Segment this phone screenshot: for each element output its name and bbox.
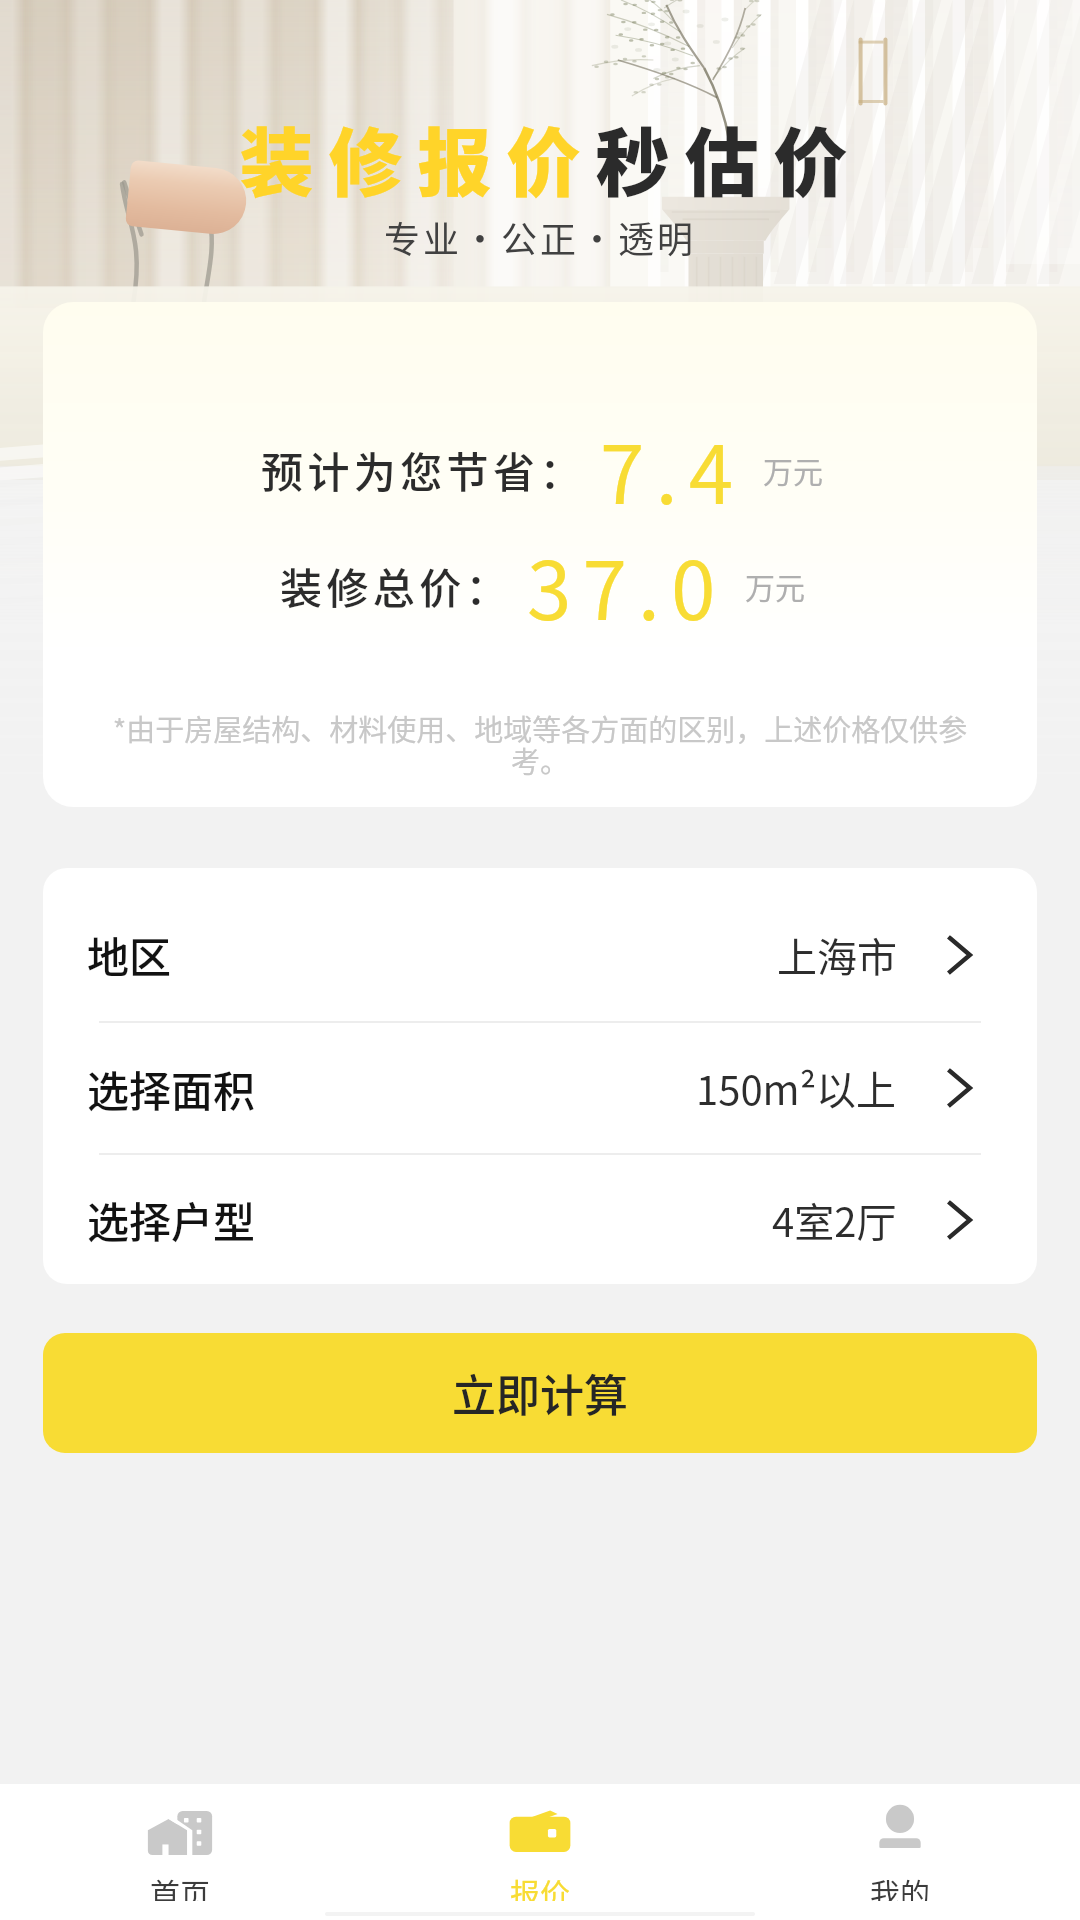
staticText: 选择户型 [87, 1189, 256, 1250]
staticText: 4室2厅 [772, 1191, 897, 1249]
staticText: 装修报价秒估价 [22, 104, 1080, 211]
button[interactable]: 首页 Home [0, 1784, 360, 1908]
button[interactable]: 地区 [43, 868, 1037, 1021]
staticText: 150m²以上 [696, 1059, 897, 1117]
staticText: 报价 [510, 1870, 570, 1901]
staticText: 7.4 [600, 411, 745, 527]
staticText: 地区 [87, 924, 172, 985]
staticText: *由于房屋结构、材料使用、地域等各方面的区别，上述价格仅供参考。 [105, 707, 975, 781]
button[interactable]: 报价 Quote [360, 1784, 720, 1908]
staticText: 万元 [763, 448, 823, 491]
staticText: 立即计算 [452, 1361, 628, 1425]
button[interactable]: 立即计算 [43, 1333, 1037, 1453]
button[interactable]: 我的 Profile [720, 1784, 1080, 1908]
staticText: 37.0 [527, 527, 727, 643]
staticText: 我的 [870, 1870, 930, 1901]
staticText: 专业·公正·透明 [0, 211, 1080, 263]
staticText: 预计为您节省： [261, 439, 586, 500]
staticText: 首页 [150, 1870, 210, 1901]
button[interactable]: 选择户型 [43, 1155, 1037, 1284]
staticText: 装修总价： [280, 555, 513, 616]
staticText: 万元 [745, 564, 805, 607]
staticText: 上海市 [777, 926, 897, 984]
button[interactable]: 选择面积 [43, 1023, 1037, 1153]
staticText: 选择面积 [87, 1058, 256, 1119]
